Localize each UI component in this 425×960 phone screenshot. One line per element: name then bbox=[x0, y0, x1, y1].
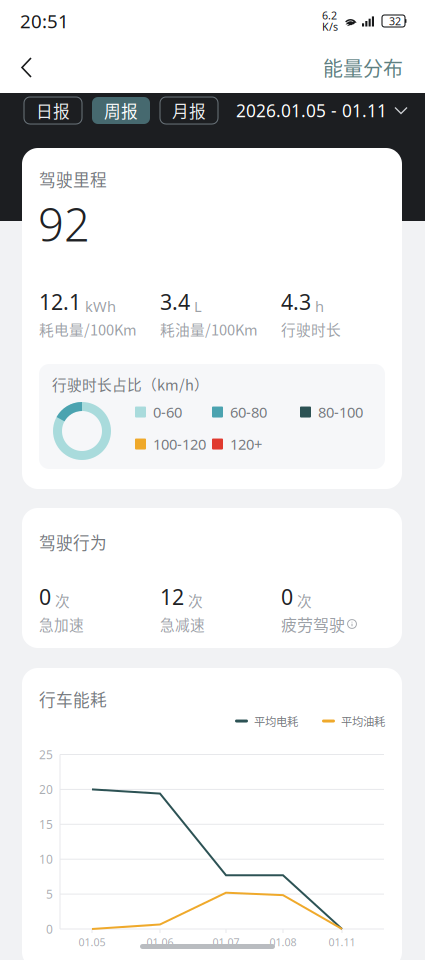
button[interactable]: 周报 bbox=[92, 97, 150, 124]
staticText: 行驶时长占比（km/h） bbox=[52, 373, 209, 395]
staticText: 耗电量/100Km bbox=[39, 318, 137, 340]
button[interactable]: 月报 bbox=[160, 97, 218, 124]
staticText: 32 bbox=[389, 14, 401, 28]
staticText: 次 bbox=[55, 590, 70, 611]
staticText: 0 bbox=[39, 583, 51, 611]
staticText: 耗油量/100Km bbox=[160, 318, 258, 340]
staticText: 01.06 bbox=[146, 935, 173, 949]
staticText: 行驶时长 bbox=[281, 318, 341, 340]
staticText: 0 bbox=[281, 583, 293, 611]
button[interactable]: 2026.01.05 - 01.11 bbox=[236, 97, 407, 124]
staticText: 15 bbox=[39, 816, 53, 832]
staticText: 12.1 bbox=[39, 288, 81, 316]
staticText: 100-120 bbox=[153, 434, 206, 454]
staticText: 驾驶里程 bbox=[39, 167, 107, 191]
staticText: 10 bbox=[39, 851, 53, 867]
staticText: 行车能耗 bbox=[39, 687, 107, 711]
staticText: 3.4 bbox=[160, 288, 190, 316]
button[interactable]: Back bbox=[8, 45, 45, 90]
staticText: 平均电耗 bbox=[254, 713, 298, 729]
button[interactable]: 日报 bbox=[24, 97, 82, 124]
staticText: 80-100 bbox=[318, 402, 363, 422]
staticText: K/s bbox=[322, 19, 338, 34]
staticText: 能量分布 bbox=[323, 53, 403, 82]
staticText: 次 bbox=[188, 590, 203, 611]
staticText: 12 bbox=[160, 583, 184, 611]
staticText: 01.05 bbox=[78, 935, 105, 949]
staticText: 01.07 bbox=[212, 935, 239, 949]
staticText: 急减速 bbox=[160, 613, 205, 635]
staticText: kWh bbox=[85, 296, 116, 316]
staticText: 60-80 bbox=[230, 402, 267, 422]
staticText: 120+ bbox=[230, 434, 262, 454]
staticText: 日报 bbox=[36, 98, 70, 122]
staticText: 92 bbox=[38, 194, 90, 254]
staticText: 01.08 bbox=[269, 935, 296, 949]
staticText: 月报 bbox=[172, 98, 206, 122]
staticText: 5 bbox=[46, 886, 53, 902]
staticText: 疲劳驾驶 bbox=[281, 612, 345, 636]
staticText: 0-60 bbox=[153, 402, 182, 422]
staticText: 次 bbox=[297, 590, 312, 611]
staticText: 20 bbox=[39, 781, 53, 797]
staticText: 01.11 bbox=[328, 935, 355, 949]
staticText: 25 bbox=[39, 746, 53, 762]
staticText: 驾驶行为 bbox=[39, 530, 107, 554]
staticText: 0 bbox=[46, 921, 53, 937]
staticText: 2026.01.05 - 01.11 bbox=[236, 99, 387, 122]
staticText: 20:51 bbox=[20, 9, 69, 33]
staticText: 6.2 bbox=[322, 8, 337, 22]
staticText: h bbox=[315, 296, 324, 316]
staticText: L bbox=[194, 296, 202, 316]
staticText: 周报 bbox=[104, 98, 138, 122]
staticText: 4.3 bbox=[281, 288, 311, 316]
staticText: 平均油耗 bbox=[341, 713, 385, 729]
staticText: 急加速 bbox=[39, 613, 84, 635]
